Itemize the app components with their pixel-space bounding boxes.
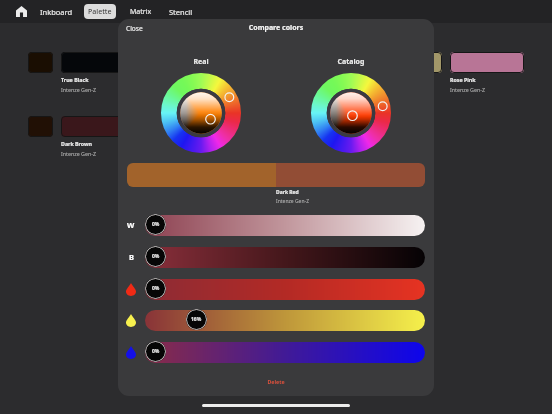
- button[interactable]: 0%: [145, 341, 166, 362]
- button[interactable]: Matrix: [130, 7, 152, 17]
- button[interactable]: Home: [15, 5, 28, 18]
- staticText: Intenze Gen-Z: [450, 86, 485, 93]
- button[interactable]: Rose Pink: [417, 52, 524, 93]
- staticText: Dark Red: [276, 189, 299, 196]
- staticText: Intenze Gen-Z: [61, 86, 96, 93]
- staticText: 0%: [152, 348, 160, 355]
- staticText: Compare colors: [118, 23, 434, 33]
- button[interactable]: [145, 310, 425, 331]
- button[interactable]: Delete: [118, 378, 434, 385]
- staticText: Intenze Gen-Z: [276, 198, 309, 205]
- button[interactable]: 0%: [145, 278, 166, 299]
- staticText: W: [127, 220, 135, 230]
- button[interactable]: 0%: [145, 246, 166, 267]
- staticText: Real: [161, 57, 241, 67]
- button[interactable]: Palette: [84, 4, 116, 19]
- staticText: 0%: [152, 285, 160, 292]
- staticText: Palette: [88, 7, 112, 17]
- button[interactable]: Inkboard: [40, 7, 73, 17]
- staticText: B: [129, 252, 134, 262]
- staticText: Intenze Gen-Z: [61, 150, 96, 157]
- staticText: 16%: [191, 316, 202, 323]
- button[interactable]: True Black: [28, 52, 135, 93]
- button[interactable]: Real color wheel: [161, 73, 241, 153]
- button[interactable]: Catalog color wheel: [311, 73, 391, 153]
- button[interactable]: 0%: [145, 214, 166, 235]
- staticText: 0%: [152, 221, 160, 228]
- button[interactable]: Close: [126, 24, 143, 33]
- staticText: True Black: [61, 76, 89, 83]
- button[interactable]: Dark Brown: [28, 116, 135, 157]
- staticText: Catalog: [311, 57, 391, 67]
- staticText: Dark Brown: [61, 140, 93, 147]
- button[interactable]: 16%: [186, 309, 207, 330]
- button[interactable]: [145, 247, 425, 268]
- staticText: Rose Pink: [450, 76, 476, 83]
- staticText: 0%: [152, 253, 160, 260]
- button[interactable]: Stencil: [169, 7, 193, 17]
- button[interactable]: [145, 279, 425, 300]
- button[interactable]: [145, 215, 425, 236]
- button[interactable]: [145, 342, 425, 363]
